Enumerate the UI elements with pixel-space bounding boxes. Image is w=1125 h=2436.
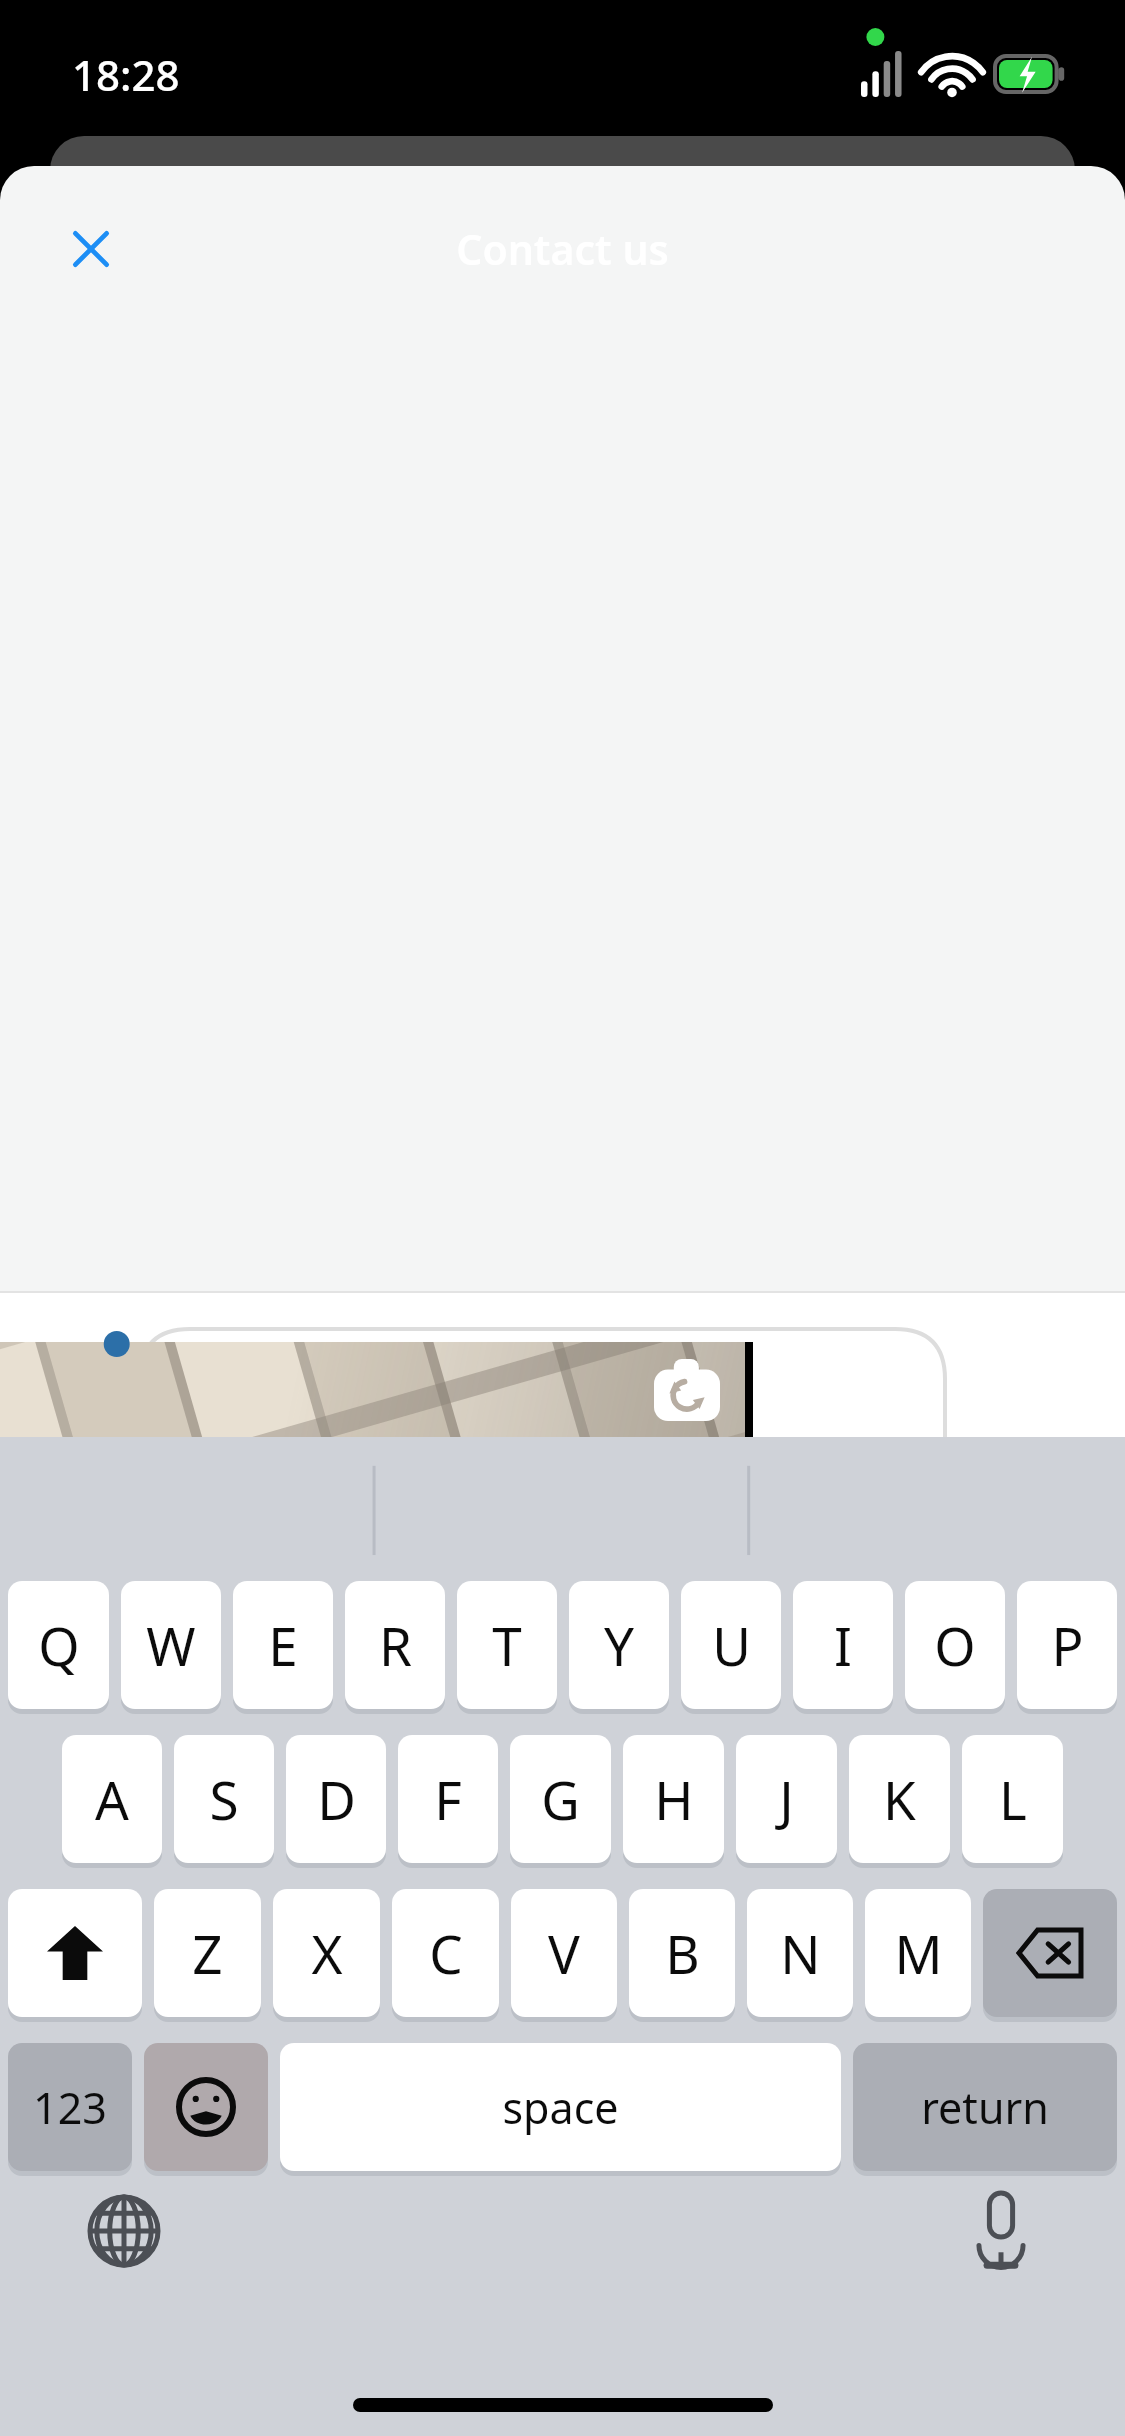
button[interactable]: C [392, 1889, 499, 2017]
button[interactable]: space [280, 2043, 841, 2171]
staticText: L [999, 1763, 1027, 1835]
button[interactable]: F [398, 1735, 498, 1863]
button[interactable]: E [233, 1581, 333, 1709]
staticText: F [434, 1763, 462, 1835]
button[interactable]: B [629, 1889, 735, 2017]
button[interactable]: Q [8, 1581, 109, 1709]
button[interactable]: P [1017, 1581, 1117, 1709]
button[interactable]: Y [569, 1581, 669, 1709]
staticText: X [311, 1917, 343, 1989]
staticText: O [934, 1609, 976, 1681]
button[interactable]: Z [154, 1889, 261, 2017]
button[interactable]: Emoji [144, 2043, 268, 2171]
staticText: W [146, 1609, 196, 1681]
staticText: N [780, 1917, 821, 1989]
button[interactable]: I [793, 1581, 893, 1709]
button[interactable]: Dictate [955, 2185, 1047, 2277]
staticText: return [921, 2078, 1049, 2137]
button[interactable]: W [121, 1581, 221, 1709]
button[interactable]: T [457, 1581, 557, 1709]
staticText: C [429, 1917, 463, 1989]
button[interactable]: Change keyboard language [78, 2185, 170, 2277]
staticText: U [712, 1609, 751, 1681]
button[interactable]: return [853, 2043, 1117, 2171]
staticText: Y [604, 1609, 634, 1681]
button[interactable]: Shift [8, 1889, 142, 2017]
button[interactable]: O [905, 1581, 1005, 1709]
staticText: 123 [33, 2078, 107, 2137]
button[interactable]: V [511, 1889, 617, 2017]
staticText: Q [38, 1609, 80, 1681]
staticText: M [894, 1917, 943, 1989]
button[interactable]: S [174, 1735, 274, 1863]
button[interactable]: Flip camera [654, 1359, 720, 1421]
button[interactable]: Close [46, 204, 136, 294]
staticText: D [317, 1763, 356, 1835]
staticText: B [665, 1917, 700, 1989]
button[interactable]: G [510, 1735, 611, 1863]
staticText: R [379, 1609, 412, 1681]
button[interactable]: D [286, 1735, 386, 1863]
staticText: G [541, 1763, 580, 1835]
staticText: K [883, 1763, 916, 1835]
button[interactable]: K [849, 1735, 950, 1863]
staticText: I [834, 1609, 852, 1681]
staticText: J [779, 1763, 794, 1835]
staticText: P [1051, 1609, 1084, 1681]
staticText: A [95, 1763, 129, 1835]
button[interactable]: 123 [8, 2043, 132, 2171]
button[interactable]: H [623, 1735, 724, 1863]
button[interactable]: X [273, 1889, 380, 2017]
button[interactable]: Backspace [983, 1889, 1117, 2017]
staticText: H [654, 1763, 694, 1835]
staticText: 18:28 [72, 46, 180, 103]
button[interactable]: N [747, 1889, 853, 2017]
button[interactable]: J [736, 1735, 837, 1863]
staticText: T [492, 1609, 522, 1681]
staticText: Z [192, 1917, 223, 1989]
staticText: Contact us [456, 221, 669, 277]
button[interactable]: A [62, 1735, 162, 1863]
staticText: S [209, 1763, 239, 1835]
button[interactable]: M [865, 1889, 971, 2017]
staticText: space [502, 2078, 619, 2137]
button[interactable]: R [345, 1581, 445, 1709]
staticText: E [268, 1609, 298, 1681]
button[interactable]: L [962, 1735, 1063, 1863]
button[interactable]: U [681, 1581, 781, 1709]
staticText: V [548, 1917, 580, 1989]
